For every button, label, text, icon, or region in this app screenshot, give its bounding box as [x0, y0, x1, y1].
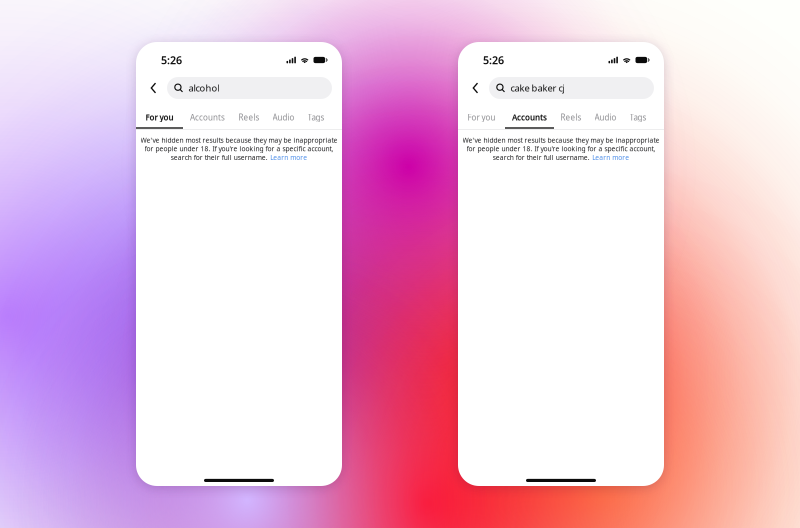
staticText: search for their full username.	[171, 153, 268, 162]
staticText: For you	[467, 112, 495, 123]
button[interactable]: Back	[465, 77, 486, 99]
staticText: For you	[145, 112, 173, 123]
staticText: Learn more	[270, 153, 307, 162]
button[interactable]: Learn more	[592, 153, 629, 162]
staticText: 5:26	[161, 53, 182, 67]
staticText: Tags	[629, 112, 646, 123]
button[interactable]: alcohol	[167, 77, 332, 99]
staticText: Learn more	[592, 153, 629, 162]
button[interactable]: Reels	[232, 110, 266, 129]
button[interactable]: Tags	[301, 110, 331, 129]
button[interactable]: Audio	[266, 110, 301, 129]
staticText: 5:26	[483, 53, 504, 67]
staticText: Audio	[594, 112, 616, 123]
staticText: cake baker cj	[510, 82, 564, 94]
staticText: for people under 18. If you're looking f…	[466, 144, 655, 153]
staticText: We've hidden most results because they m…	[140, 136, 337, 145]
staticText: We've hidden most results because they m…	[462, 136, 659, 145]
staticText: Reels	[238, 112, 259, 123]
staticText: Audio	[272, 112, 294, 123]
button[interactable]: Audio	[588, 110, 623, 129]
staticText: search for their full username.	[493, 153, 590, 162]
button[interactable]: Accounts	[183, 110, 232, 129]
button[interactable]: For you	[136, 110, 183, 129]
staticText: for people under 18. If you're looking f…	[144, 144, 333, 153]
staticText: alcohol	[188, 82, 219, 94]
button[interactable]: Tags	[623, 110, 653, 129]
staticText: Reels	[560, 112, 581, 123]
button[interactable]: For you	[458, 110, 505, 129]
button[interactable]: cake baker cj	[489, 77, 654, 99]
button[interactable]: Accounts	[505, 110, 554, 129]
button[interactable]: Reels	[554, 110, 588, 129]
staticText: Accounts	[512, 112, 547, 123]
button[interactable]: Back	[143, 77, 164, 99]
staticText: Accounts	[190, 112, 225, 123]
staticText: Tags	[307, 112, 324, 123]
button[interactable]: Learn more	[270, 153, 307, 162]
